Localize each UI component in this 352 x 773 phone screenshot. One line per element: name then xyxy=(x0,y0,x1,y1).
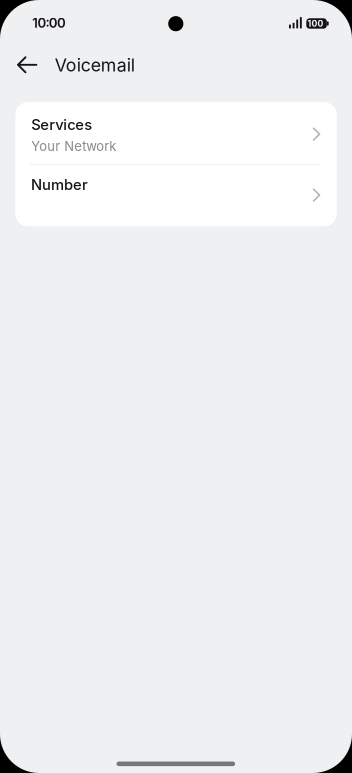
staticText: 100 xyxy=(307,18,323,29)
staticText: Your Network xyxy=(31,138,116,154)
button[interactable]: Number xyxy=(15,164,337,226)
staticText: Voicemail xyxy=(55,54,135,76)
staticText: Number xyxy=(31,176,88,193)
staticText: Services xyxy=(31,116,92,134)
staticText: 10:00 xyxy=(32,15,66,31)
button[interactable]: Back xyxy=(5,43,49,87)
button[interactable]: Services xyxy=(15,102,337,164)
